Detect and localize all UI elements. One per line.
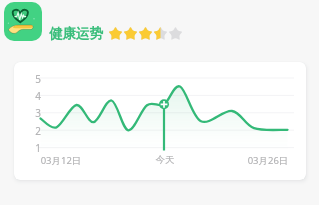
staticText: 健康运势 (49, 25, 103, 42)
button[interactable]: 健康运势趋势图 (14, 62, 306, 180)
staticText: 03月26日 (238, 154, 298, 167)
staticText: 03月12日 (31, 154, 91, 167)
staticText: 5 (31, 72, 45, 86)
staticText: 2 (31, 124, 45, 138)
button[interactable]: 评分 5 星 (168, 26, 183, 41)
staticText: 1 (31, 141, 45, 155)
button[interactable]: 评分 2 星 (123, 26, 138, 41)
button[interactable]: 健康运势 (4, 2, 42, 41)
staticText: 3 (31, 106, 45, 120)
staticText: 今天 (135, 154, 195, 166)
staticText: 4 (31, 89, 45, 103)
button[interactable]: 评分 1 星 (108, 26, 123, 41)
button[interactable]: 评分 3 星 (138, 26, 153, 41)
button[interactable]: 评分 4 星 (153, 26, 168, 41)
button[interactable]: 健康运势 (49, 25, 103, 42)
